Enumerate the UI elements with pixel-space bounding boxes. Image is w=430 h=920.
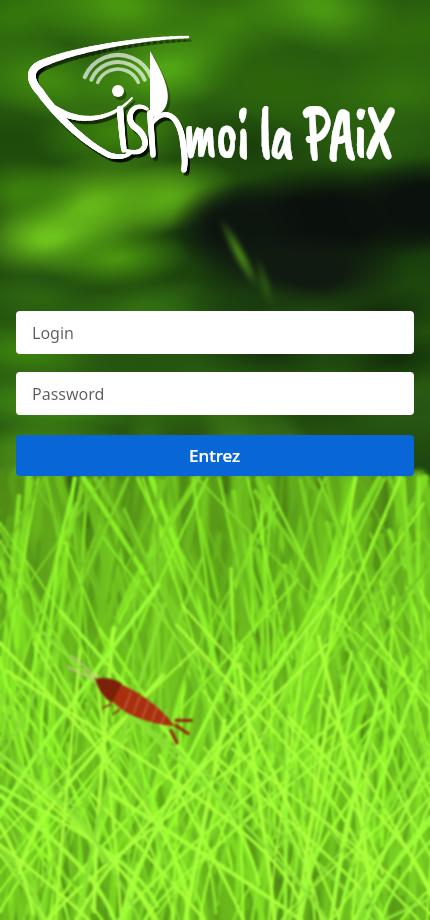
staticText: Login [32,322,74,344]
staticText: Password [32,383,105,405]
button[interactable]: Entrez [16,435,414,476]
button[interactable]: Login [16,311,414,354]
staticText: Entrez [189,444,241,467]
staticText: moi la PAiX [183,84,394,181]
button[interactable]: Password [16,372,414,415]
